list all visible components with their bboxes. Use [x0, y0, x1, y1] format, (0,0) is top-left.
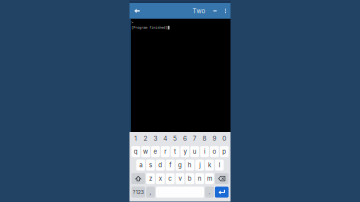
button[interactable]: z: [146, 173, 155, 184]
staticText: c: [168, 175, 172, 182]
button[interactable]: 8: [200, 133, 209, 144]
staticText: 6: [183, 135, 187, 142]
button[interactable]: ?123: [131, 187, 145, 198]
button[interactable]: u: [190, 146, 199, 157]
staticText: e: [153, 148, 157, 155]
button[interactable]: f: [166, 160, 174, 171]
button[interactable]: Minimise: [210, 3, 219, 19]
button[interactable]: b: [185, 173, 194, 184]
button[interactable]: i: [200, 146, 209, 157]
staticText: o: [212, 148, 216, 155]
button[interactable]: .: [205, 187, 214, 198]
staticText: [Program finished]: [131, 26, 167, 30]
staticText: 3: [153, 135, 157, 142]
button[interactable]: [215, 173, 229, 184]
button[interactable]: a: [136, 160, 145, 171]
button[interactable]: c: [166, 173, 174, 184]
button[interactable]: h: [185, 160, 194, 171]
staticText: y: [183, 148, 186, 155]
staticText: >: [131, 20, 133, 24]
staticText: l: [219, 161, 220, 169]
staticText: ?123: [133, 189, 144, 195]
button[interactable]: 9: [209, 133, 219, 144]
staticText: p: [222, 148, 226, 155]
staticText: d: [158, 161, 162, 169]
staticText: 5: [173, 135, 177, 142]
button[interactable]: d: [156, 160, 165, 171]
button[interactable]: v: [176, 173, 184, 184]
button[interactable]: [131, 173, 145, 184]
staticText: g: [178, 161, 182, 169]
button[interactable]: j: [195, 160, 204, 171]
staticText: 2: [144, 135, 148, 142]
button[interactable]: 0: [219, 133, 229, 144]
button[interactable]: s: [146, 160, 155, 171]
button[interactable]: y: [180, 146, 189, 157]
button[interactable]: 1: [131, 133, 141, 144]
button[interactable]: g: [176, 160, 184, 171]
staticText: Two: [192, 7, 205, 15]
button[interactable]: 4: [160, 133, 170, 144]
button[interactable]: p: [220, 146, 229, 157]
button[interactable]: l: [215, 160, 224, 171]
staticText: v: [178, 175, 181, 182]
button[interactable]: 6: [180, 133, 190, 144]
button[interactable]: t: [171, 146, 179, 157]
staticText: x: [159, 175, 162, 182]
staticText: i: [204, 148, 205, 155]
staticText: q: [134, 148, 138, 155]
staticText: z: [149, 175, 152, 182]
button[interactable]: [156, 187, 204, 198]
staticText: b: [188, 175, 192, 182]
staticText: h: [188, 161, 192, 169]
button[interactable]: Back: [131, 3, 142, 19]
staticText: m: [207, 175, 212, 182]
button[interactable]: k: [205, 160, 214, 171]
button[interactable]: 2: [141, 133, 150, 144]
staticText: 7: [193, 135, 197, 142]
button[interactable]: n: [195, 173, 204, 184]
staticText: 9: [212, 135, 216, 142]
button[interactable]: r: [161, 146, 170, 157]
staticText: 4: [163, 135, 167, 142]
button[interactable]: [215, 187, 229, 198]
staticText: s: [149, 161, 152, 169]
button[interactable]: m: [205, 173, 214, 184]
button[interactable]: w: [141, 146, 150, 157]
staticText: r: [164, 148, 166, 155]
staticText: w: [143, 148, 148, 155]
staticText: u: [193, 148, 197, 155]
button[interactable]: 3: [150, 133, 160, 144]
button[interactable]: ,: [146, 187, 155, 198]
staticText: 1: [134, 135, 137, 142]
button[interactable]: o: [210, 146, 219, 157]
button[interactable]: 7: [190, 133, 200, 144]
staticText: f: [169, 161, 171, 169]
staticText: ,: [149, 189, 151, 196]
button[interactable]: 5: [170, 133, 180, 144]
staticText: 8: [203, 135, 207, 142]
staticText: t: [174, 148, 176, 155]
staticText: a: [139, 161, 142, 169]
staticText: .: [208, 189, 210, 196]
button[interactable]: q: [131, 146, 140, 157]
button[interactable]: e: [151, 146, 160, 157]
button[interactable]: x: [156, 173, 165, 184]
staticText: j: [199, 161, 200, 169]
staticText: k: [208, 161, 211, 169]
staticText: n: [198, 175, 202, 182]
button[interactable]: More options: [221, 3, 229, 19]
staticText: 0: [222, 135, 226, 142]
